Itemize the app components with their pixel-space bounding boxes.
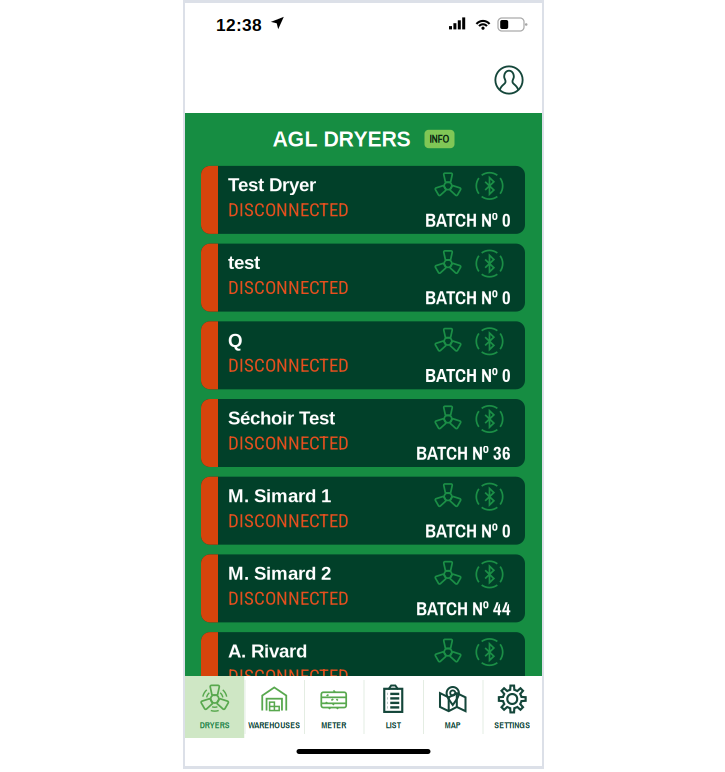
button[interactable]: M. Simard 1 [201, 477, 525, 545]
button[interactable]: LIST [363, 676, 423, 738]
staticText: 12:38 [216, 15, 262, 35]
staticText: DISCONNECTED [228, 276, 349, 299]
button[interactable]: INFO [424, 130, 454, 148]
staticText: BATCH Nº 0 [425, 518, 511, 543]
staticText: DISCONNECTED [228, 587, 349, 609]
button[interactable]: DRYERS [185, 676, 244, 738]
staticText: BATCH Nº 0 [425, 285, 511, 310]
staticText: BATCH Nº 44 [416, 596, 511, 621]
button[interactable]: WAREHOUSES [244, 676, 304, 738]
staticText: BATCH Nº 0 [425, 673, 511, 699]
staticText: DISCONNECTED [228, 665, 349, 687]
staticText: DISCONNECTED [228, 510, 349, 532]
button[interactable]: A. Rivard [201, 632, 525, 700]
button[interactable]: Q [201, 321, 525, 389]
staticText: DISCONNECTED [228, 432, 349, 454]
button[interactable]: SETTINGS [482, 676, 542, 738]
staticText: Séchoir Test [228, 408, 335, 428]
staticText: BATCH Nº 0 [425, 363, 511, 388]
button[interactable]: METER [304, 676, 363, 738]
button[interactable]: MAP [423, 676, 482, 738]
staticText: SETTINGS [494, 719, 530, 731]
staticText: DISCONNECTED [228, 354, 349, 376]
staticText: BATCH Nº 0 [425, 207, 511, 232]
staticText: METER [321, 719, 346, 731]
staticText: Q [228, 330, 243, 351]
button[interactable]: test [201, 244, 525, 312]
staticText: LIST [386, 719, 401, 731]
staticText: DRYERS [200, 719, 230, 731]
staticText: Test Dryer [228, 174, 316, 195]
staticText: M. Simard 2 [228, 563, 331, 584]
staticText: BATCH Nº 36 [416, 440, 511, 465]
staticText: AGL DRYERS [272, 127, 410, 151]
staticText: MAP [445, 719, 461, 731]
button[interactable]: Account [488, 59, 530, 101]
staticText: INFO [429, 132, 449, 146]
staticText: A. Rivard [228, 641, 307, 662]
staticText: DISCONNECTED [228, 199, 349, 221]
button[interactable]: M. Simard 2 [201, 554, 525, 622]
staticText: test [228, 252, 260, 273]
button[interactable]: Séchoir Test [201, 399, 525, 467]
button[interactable]: Test Dryer [201, 166, 525, 234]
staticText: WAREHOUSES [248, 719, 300, 731]
staticText: M. Simard 1 [228, 485, 331, 506]
